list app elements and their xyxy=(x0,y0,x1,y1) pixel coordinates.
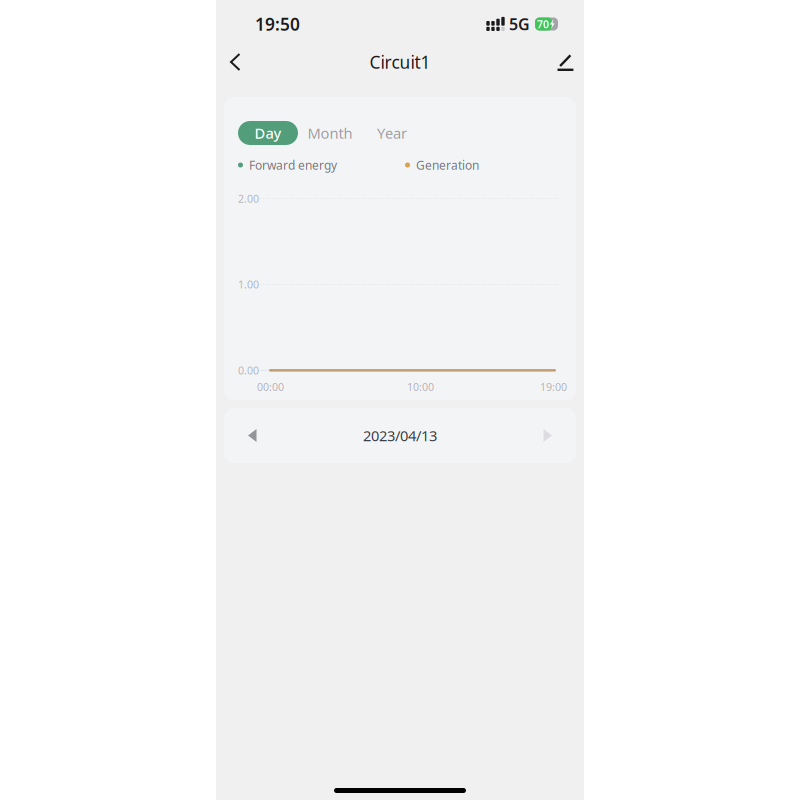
staticText: 2023/04/13 xyxy=(363,426,437,445)
staticText: 0.00 xyxy=(238,363,259,377)
staticText: 2.00 xyxy=(238,191,259,206)
staticText: Day xyxy=(254,123,281,143)
staticText: 19:50 xyxy=(255,12,300,35)
staticText: 5G xyxy=(509,13,530,35)
staticText: Forward energy xyxy=(249,157,337,173)
staticText: 1.00 xyxy=(238,277,259,291)
staticText: 70 xyxy=(537,17,549,31)
staticText: Year xyxy=(377,123,407,143)
staticText: 10:00 xyxy=(407,380,434,394)
staticText: Circuit1 xyxy=(369,50,430,73)
button[interactable]: Day xyxy=(238,121,298,145)
staticText: 00:00 xyxy=(257,380,284,394)
staticText: Month xyxy=(307,123,352,143)
button[interactable]: Next day xyxy=(532,421,564,449)
button[interactable]: Back xyxy=(217,45,251,79)
button[interactable]: Edit xyxy=(542,45,576,79)
staticText: Generation xyxy=(416,157,479,173)
button[interactable]: Year xyxy=(362,121,422,145)
button[interactable]: Previous day xyxy=(236,421,268,449)
staticText: 19:00 xyxy=(540,380,567,394)
button[interactable]: Month xyxy=(300,121,360,145)
